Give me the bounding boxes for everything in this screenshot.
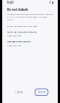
staticText: To avoid distractions while driving, tur… [7,13,52,21]
staticText: Allow notifications from apps [7,24,37,28]
staticText: Manage notifications [7,40,31,43]
staticText: ıl ▮ [49,1,53,4]
staticText: Turn on Do Not Disturb [7,30,36,33]
button[interactable]: Cancel [12,88,26,96]
staticText: Open Settings [7,34,21,37]
staticText: Open Settings [7,44,21,47]
button[interactable]: Done [35,89,48,96]
staticText: Cancel [15,90,23,94]
staticText: 9:41 [7,0,14,4]
staticText: Done [38,90,45,94]
staticText: Do not disturb [7,8,28,12]
